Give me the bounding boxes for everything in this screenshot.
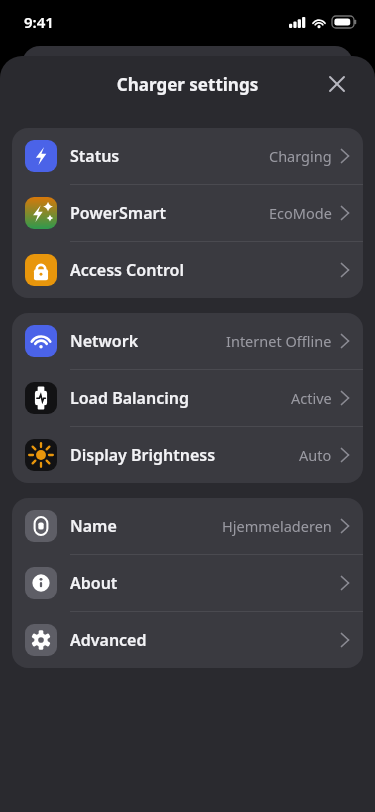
staticText: Hjemmeladeren xyxy=(222,516,332,536)
staticText: Auto xyxy=(299,445,332,465)
button[interactable]: Name xyxy=(12,498,363,555)
staticText: Status xyxy=(70,145,120,167)
button[interactable]: Network xyxy=(12,313,363,370)
button[interactable]: Access Control xyxy=(12,242,363,298)
button[interactable]: Load Balancing xyxy=(12,370,363,427)
button[interactable]: Status xyxy=(12,128,363,185)
staticText: Charger settings xyxy=(0,73,375,96)
staticText: 9:41 xyxy=(24,12,54,32)
button[interactable]: Display Brightness xyxy=(12,427,363,483)
staticText: About xyxy=(70,572,118,594)
staticText: Charging xyxy=(269,146,332,166)
staticText: Active xyxy=(291,388,332,408)
button[interactable]: Close xyxy=(321,68,353,100)
staticText: EcoMode xyxy=(269,203,332,223)
button[interactable]: Advanced xyxy=(12,612,363,668)
staticText: Network xyxy=(70,330,139,352)
button[interactable]: About xyxy=(12,555,363,612)
staticText: Access Control xyxy=(70,259,184,281)
staticText: Display Brightness xyxy=(70,444,216,466)
button[interactable]: PowerSmart xyxy=(12,185,363,242)
staticText: Load Balancing xyxy=(70,387,189,409)
staticText: PowerSmart xyxy=(70,202,166,224)
staticText: Advanced xyxy=(70,629,147,651)
staticText: Name xyxy=(70,515,117,537)
staticText: Internet Offline xyxy=(226,331,332,351)
